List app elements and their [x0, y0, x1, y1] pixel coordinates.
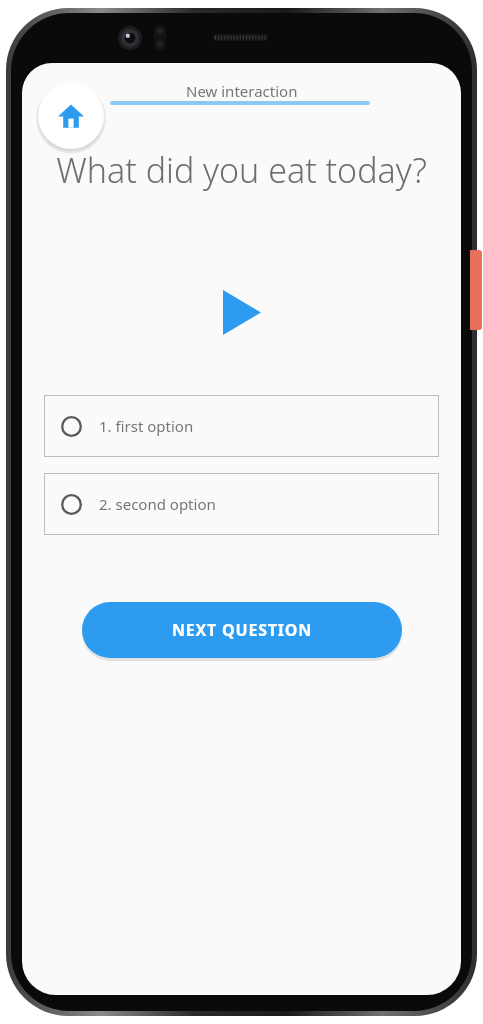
staticText: NEXT QUESTION	[172, 619, 313, 641]
button[interactable]: 1. first option	[44, 395, 439, 457]
staticText: New interaction	[186, 81, 298, 101]
staticText: What did you eat today?	[52, 147, 431, 193]
button[interactable]: Home	[38, 83, 104, 149]
staticText: 2. second option	[99, 494, 216, 514]
other: Power button	[470, 250, 482, 330]
button[interactable]: 2. second option	[44, 473, 439, 535]
button[interactable]: Play audio	[215, 285, 269, 339]
button[interactable]: NEXT QUESTION	[82, 602, 402, 658]
staticText: 1. first option	[99, 416, 194, 436]
